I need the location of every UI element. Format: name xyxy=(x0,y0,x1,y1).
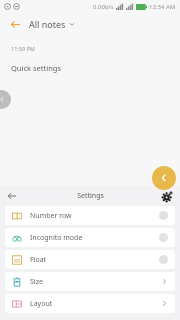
button[interactable]: Back xyxy=(5,189,19,203)
staticText: Number row xyxy=(30,211,72,221)
button[interactable]: Float xyxy=(5,250,175,269)
staticText: Float xyxy=(30,255,47,265)
button[interactable]: Add settings xyxy=(160,189,174,203)
button[interactable]: All notes xyxy=(29,18,75,30)
staticText: Size xyxy=(30,277,43,287)
button[interactable]: Layout xyxy=(5,294,175,313)
button[interactable]: Previous xyxy=(0,90,11,109)
staticText: Quick settings xyxy=(11,63,61,73)
staticText: 0.00b/s xyxy=(93,3,114,11)
button[interactable]: Incognito mode xyxy=(5,228,175,247)
button[interactable]: Size xyxy=(5,272,175,291)
button[interactable]: Collapse xyxy=(152,166,176,190)
button[interactable]: Number row xyxy=(5,206,175,225)
button[interactable]: Back xyxy=(7,16,23,32)
staticText: All notes xyxy=(29,18,66,30)
staticText: Layout xyxy=(30,299,53,309)
staticText: 11:59 PM xyxy=(11,45,35,52)
staticText: Settings xyxy=(77,191,104,201)
staticText: Incognito mode xyxy=(30,233,83,243)
staticText: 12:34 AM xyxy=(149,3,176,11)
